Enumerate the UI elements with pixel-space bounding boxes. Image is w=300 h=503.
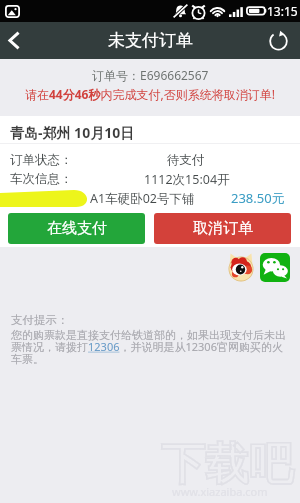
- staticText: 238.50元: [231, 189, 285, 207]
- staticText: 订单号：E696662567: [92, 67, 209, 83]
- staticText: 13:15: [267, 3, 298, 19]
- button[interactable]: Back: [0, 22, 28, 59]
- staticText: 订单状态：: [10, 152, 73, 168]
- staticText: 您的购票款是直接支付给铁道部的，如果出现支付后未出票情况，请拨打12306，并说…: [11, 328, 289, 366]
- staticText: 未支付订单: [108, 30, 193, 51]
- button[interactable]: Share to Weibo: [228, 253, 254, 282]
- staticText: 1112次15:04开: [144, 171, 230, 188]
- button[interactable]: Share to WeChat: [260, 253, 290, 282]
- staticText: 下载吧: [161, 437, 293, 492]
- staticText: 在线支付: [47, 219, 107, 238]
- staticText: A1车硬卧02号下铺: [90, 190, 195, 207]
- staticText: 取消订单: [193, 219, 253, 238]
- button[interactable]: 在线支付: [8, 213, 145, 244]
- staticText: www.xiazaiba.com: [172, 484, 268, 499]
- button[interactable]: Refresh: [256, 22, 300, 59]
- staticText: 车次信息：: [10, 171, 73, 187]
- staticText: 青岛-郑州 10月10日: [10, 123, 135, 142]
- staticText: 请在44分46秒内完成支付,否则系统将取消订单!: [25, 86, 275, 102]
- button[interactable]: 取消订单: [154, 213, 291, 244]
- staticText: 支付提示：: [11, 313, 69, 327]
- staticText: 待支付: [167, 152, 205, 168]
